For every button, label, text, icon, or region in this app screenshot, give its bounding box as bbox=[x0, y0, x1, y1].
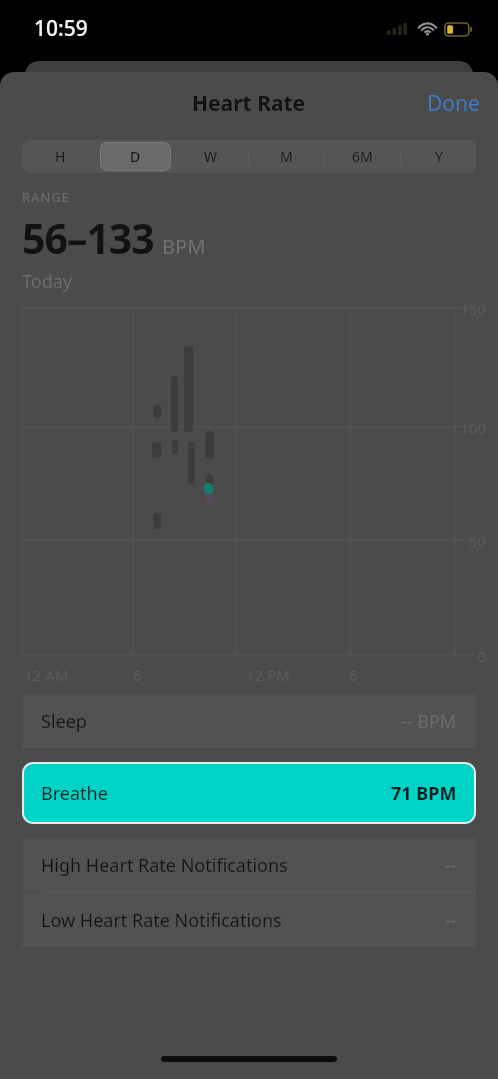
staticText: Today bbox=[22, 269, 72, 294]
button[interactable]: Sleep bbox=[22, 694, 476, 748]
staticText: 56–133 bbox=[22, 210, 154, 266]
button[interactable]: D bbox=[100, 142, 171, 171]
other: Home indicator bbox=[161, 1056, 337, 1062]
button[interactable]: High Heart Rate Notifications bbox=[22, 838, 476, 892]
button[interactable]: W bbox=[175, 142, 246, 171]
staticText: H bbox=[55, 147, 66, 166]
staticText: 50 bbox=[436, 531, 486, 551]
staticText: 100 bbox=[436, 418, 486, 438]
staticText: -- bbox=[445, 853, 457, 878]
staticText: 12 PM bbox=[246, 665, 290, 685]
staticText: -- bbox=[445, 908, 457, 933]
staticText: -- BPM bbox=[401, 709, 457, 734]
button[interactable]: Y bbox=[403, 142, 474, 171]
staticText: Breathe bbox=[41, 781, 108, 806]
staticText: Heart Rate bbox=[192, 89, 306, 118]
staticText: W bbox=[204, 147, 218, 166]
staticText: BPM bbox=[162, 233, 206, 260]
staticText: 150 bbox=[436, 299, 486, 319]
button[interactable]: 6M bbox=[327, 142, 398, 171]
staticText: 10:59 bbox=[34, 14, 88, 43]
staticText: 6 bbox=[133, 665, 142, 685]
staticText: 71 BPM bbox=[391, 781, 457, 806]
staticText: RANGE bbox=[22, 188, 70, 206]
staticText: D bbox=[130, 147, 141, 166]
button[interactable]: H bbox=[24, 142, 96, 171]
staticText: 6M bbox=[352, 147, 373, 166]
staticText: High Heart Rate Notifications bbox=[41, 853, 288, 878]
staticText: M bbox=[280, 147, 293, 166]
button[interactable]: Done bbox=[409, 81, 498, 126]
staticText: Sleep bbox=[41, 709, 87, 734]
staticText: 12 AM bbox=[24, 665, 69, 685]
staticText: Y bbox=[435, 147, 443, 166]
staticText: Low Heart Rate Notifications bbox=[41, 908, 282, 933]
button[interactable]: M bbox=[251, 142, 322, 171]
button[interactable]: Breathe bbox=[22, 762, 476, 824]
staticText: Done bbox=[427, 89, 480, 118]
button[interactable]: Low Heart Rate Notifications bbox=[22, 893, 476, 947]
staticText: 6 bbox=[349, 665, 358, 685]
